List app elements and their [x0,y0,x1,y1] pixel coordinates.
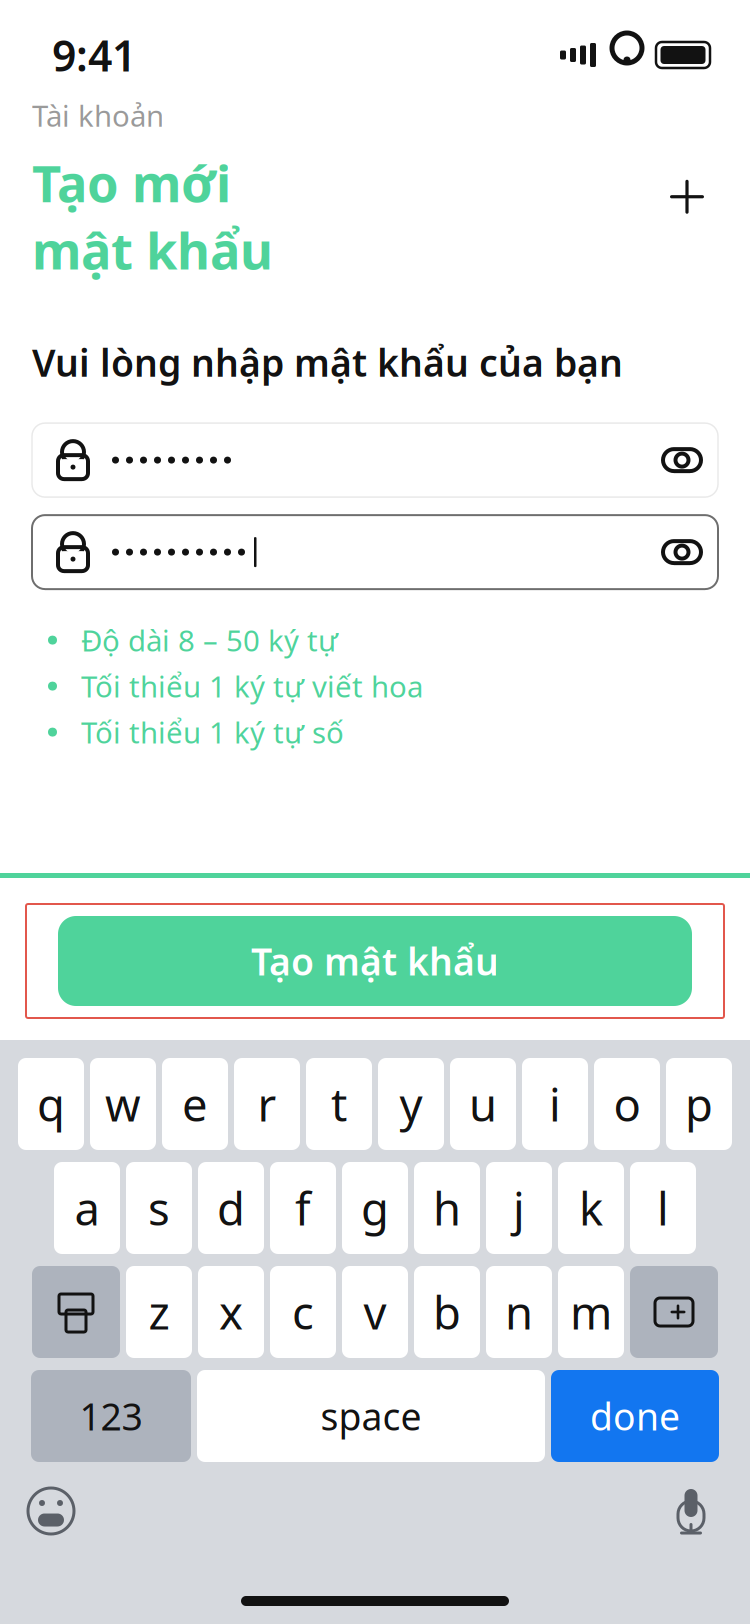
button[interactable]: g [342,1162,408,1254]
staticText: 9:41 [52,27,136,83]
button[interactable]: z [126,1266,192,1358]
staticText: o [613,1074,640,1134]
staticText: done [590,1391,680,1441]
staticText: Tối thiểu 1 ký tự viết hoa [81,667,423,706]
button[interactable]: Biểu tượng cảm xúc [6,1476,96,1546]
button[interactable]: i [522,1058,588,1150]
button[interactable]: c [270,1266,336,1358]
button[interactable]: l [630,1162,696,1254]
staticText: t [331,1074,347,1134]
staticText: q [37,1074,65,1134]
button[interactable]: k [558,1162,624,1254]
button[interactable]: Đóng [652,162,722,232]
button[interactable]: e [162,1058,228,1150]
staticText: k [579,1178,603,1238]
staticText: space [320,1391,421,1441]
staticText: i [549,1074,561,1134]
button[interactable]: m [558,1266,624,1358]
button[interactable]: Tạo mật khẩu [26,904,724,1018]
staticText: Tối thiểu 1 ký tự số [81,713,344,752]
button[interactable]: u [450,1058,516,1150]
staticText: h [433,1178,461,1238]
button[interactable]: Hiện mật khẩu [646,515,718,589]
button[interactable]: r [234,1058,300,1150]
button[interactable]: v [342,1266,408,1358]
staticText: Tạo mới mật khẩu [32,149,273,284]
button[interactable]: p [666,1058,732,1150]
button[interactable]: j [486,1162,552,1254]
staticText: Vui lòng nhập mật khẩu của bạn [32,337,623,387]
staticText: r [257,1074,276,1134]
button[interactable]: Xoá [630,1266,718,1358]
staticText: f [295,1178,311,1238]
button[interactable]: 123 [31,1370,191,1462]
staticText: b [433,1282,461,1342]
button[interactable]: Đọc chính tả [646,1476,736,1546]
button[interactable]: Shift [32,1266,120,1358]
button[interactable]: h [414,1162,480,1254]
button[interactable]: Hiện mật khẩu [646,423,718,497]
button[interactable]: o [594,1058,660,1150]
staticText: w [105,1074,141,1134]
button[interactable]: d [198,1162,264,1254]
button[interactable]: space [197,1370,545,1462]
button[interactable]: s [126,1162,192,1254]
staticText: u [469,1074,497,1134]
button[interactable]: a [54,1162,120,1254]
staticText: m [570,1282,612,1342]
staticText: z [148,1282,169,1342]
staticText: v [363,1282,386,1342]
button[interactable]: q [18,1058,84,1150]
button[interactable]: t [306,1058,372,1150]
button[interactable]: b [414,1266,480,1358]
staticText: Tạo mật khẩu [251,936,499,986]
staticText: y [399,1074,422,1134]
staticText: g [361,1178,389,1238]
staticText: a [74,1178,99,1238]
staticText: Độ dài 8 – 50 ký tự [81,621,338,660]
staticText: l [657,1178,669,1238]
staticText: x [219,1282,243,1342]
staticText: n [505,1282,533,1342]
staticText: d [217,1178,245,1238]
staticText: e [182,1074,208,1134]
button[interactable]: w [90,1058,156,1150]
staticText: c [292,1282,314,1342]
staticText: s [148,1178,170,1238]
staticText: j [513,1178,525,1238]
staticText: 123 [79,1391,142,1441]
staticText: p [685,1074,713,1134]
button[interactable]: f [270,1162,336,1254]
button[interactable]: x [198,1266,264,1358]
staticText: Tài khoản [32,96,164,135]
button[interactable]: n [486,1266,552,1358]
button[interactable]: y [378,1058,444,1150]
button[interactable]: done [551,1370,719,1462]
